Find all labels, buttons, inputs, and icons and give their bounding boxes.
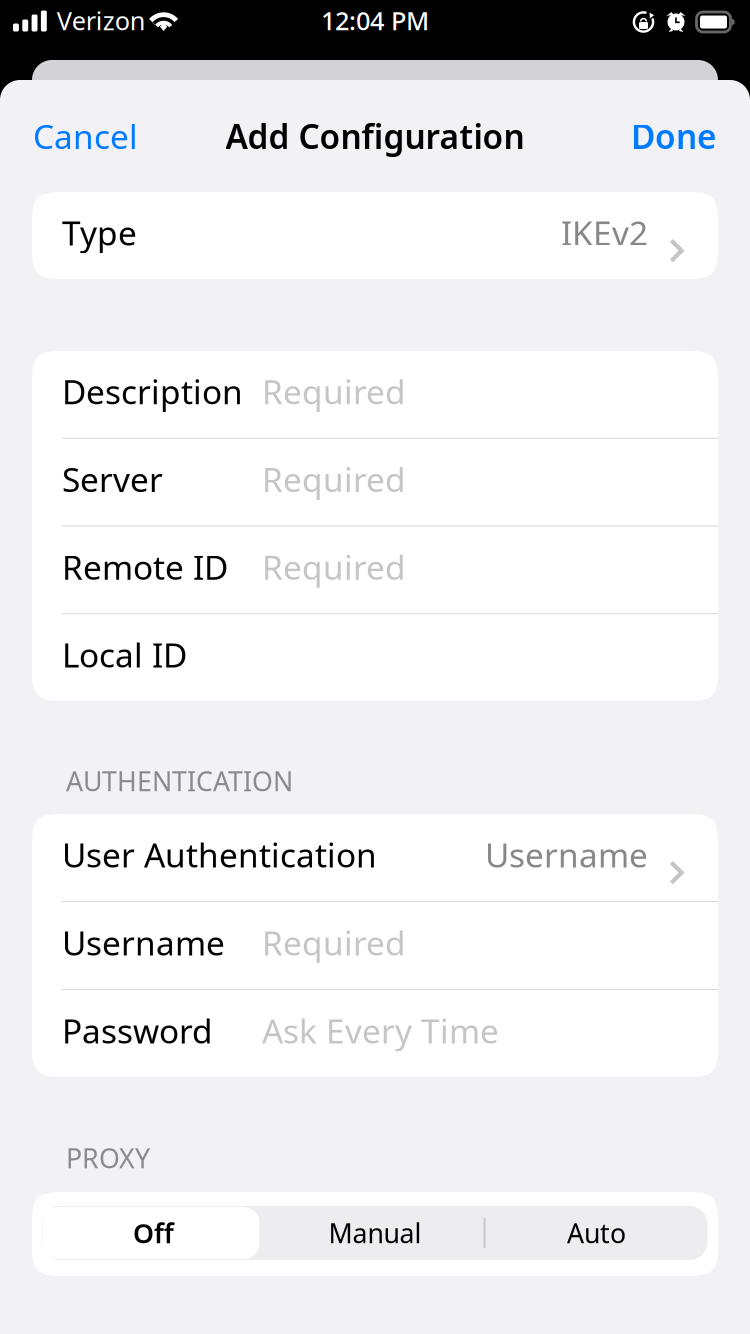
staticText: Auto [567,1215,626,1251]
staticText: Ask Every Time [262,1008,499,1053]
button[interactable]: User Authentication [32,814,718,901]
staticText: Required [262,545,406,589]
staticText: PROXY [66,1140,150,1176]
staticText: Server [62,457,163,501]
staticText: Manual [328,1215,421,1251]
button[interactable]: Cancel [33,114,138,158]
staticText: Required [262,369,406,413]
staticText: Type [62,210,137,255]
staticText: AUTHENTICATION [66,763,293,799]
staticText: Password [62,1008,213,1053]
button[interactable]: Type [32,192,718,279]
staticText: Username [62,920,225,965]
staticText: Description [62,369,243,413]
staticText: User Authentication [62,832,377,877]
staticText: Username [485,832,648,877]
button[interactable]: Off [43,1206,264,1260]
staticText: Off [133,1215,174,1251]
button[interactable]: Manual [264,1206,486,1260]
staticText: Done [631,114,717,158]
staticText: 12:04 PM [321,4,429,37]
staticText: Verizon [57,4,146,37]
staticText: Required [262,920,406,965]
button[interactable]: Done [631,114,717,158]
staticText: Cancel [33,114,138,158]
staticText: Remote ID [62,545,228,589]
staticText: IKEv2 [561,210,648,255]
button[interactable]: Auto [486,1206,707,1260]
staticText: Local ID [62,632,187,677]
staticText: Add Configuration [225,114,524,158]
staticText: Required [262,457,406,501]
